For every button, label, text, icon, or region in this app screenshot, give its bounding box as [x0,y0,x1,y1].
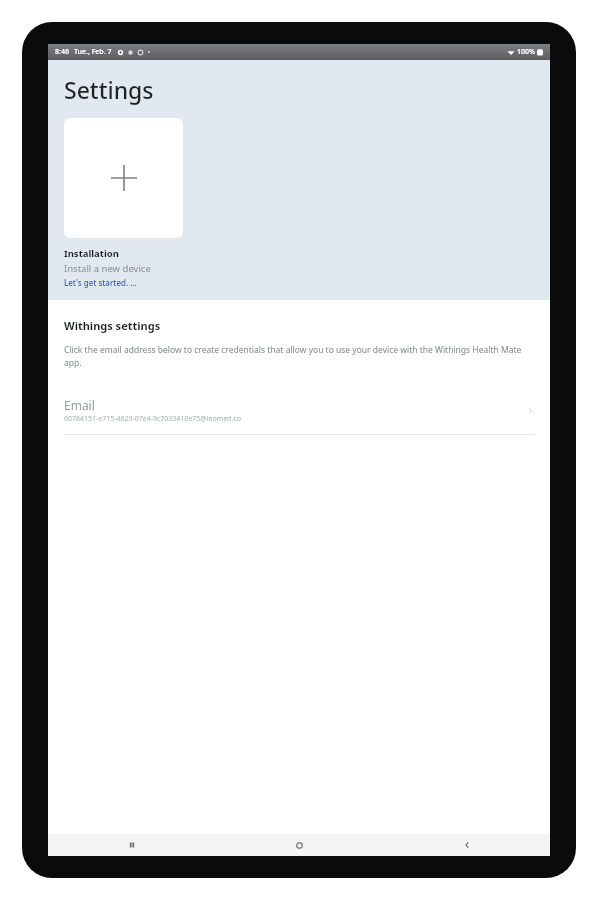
staticText: Settings [64,74,154,105]
staticText: Click the email address below to create … [64,344,534,369]
button[interactable]: Installation [64,247,151,288]
staticText: Withings settings [64,318,161,333]
button[interactable]: Home [216,834,383,856]
staticText: Let's get started. ... [64,277,137,288]
button[interactable]: Email [64,395,534,426]
staticText: Install a new device [64,262,151,275]
button[interactable]: Back [383,834,550,856]
button[interactable]: Recent apps [48,834,216,856]
staticText: 60784151-e715-4629-07e4-9c7033410e75@leo… [64,414,241,424]
button[interactable]: Add a new device [64,118,183,238]
staticText: 100% [517,47,535,57]
staticText: Tue., Feb. 7 [74,47,112,57]
staticText: Email [64,397,95,413]
staticText: Installation [64,247,119,260]
staticText: 8:46 [55,47,69,57]
